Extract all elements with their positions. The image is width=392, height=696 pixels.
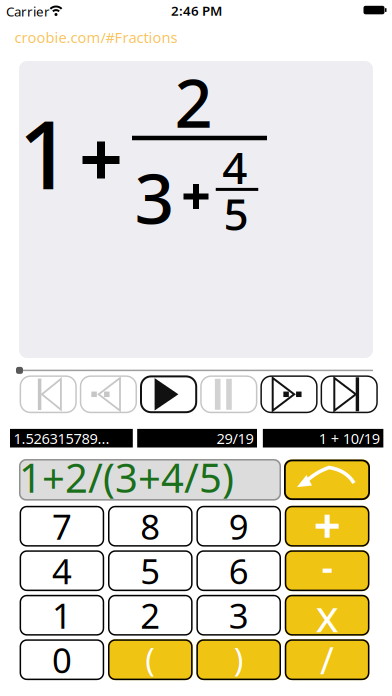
staticText: 2	[140, 592, 160, 638]
staticText: 1	[18, 90, 72, 215]
staticText: 6	[229, 548, 249, 594]
staticText: /	[320, 635, 334, 684]
staticText: 9	[229, 503, 249, 549]
staticText: 4	[52, 548, 72, 594]
button[interactable]: 6	[196, 550, 281, 591]
button[interactable]	[140, 375, 197, 413]
button[interactable]	[285, 506, 369, 547]
button[interactable]	[20, 375, 77, 413]
button[interactable]	[260, 375, 318, 413]
button[interactable]: 7	[20, 506, 104, 547]
staticText: croobie.com/#Fractions	[14, 27, 177, 47]
staticText: 3	[134, 151, 174, 243]
button[interactable]	[16, 367, 23, 374]
staticText: )	[234, 638, 244, 681]
staticText: 1.526315789...	[13, 428, 109, 448]
button[interactable]: 0	[20, 639, 104, 680]
button[interactable]: 8	[108, 506, 193, 547]
button[interactable]	[321, 375, 378, 413]
button[interactable]: x	[285, 595, 369, 636]
staticText: 4	[222, 138, 247, 196]
button[interactable]: croobie.com/#Fractions	[14, 27, 177, 47]
staticText: 5	[140, 548, 160, 594]
staticText: 7	[52, 503, 72, 549]
staticText: 1 + 10/19	[319, 428, 380, 448]
button[interactable]: 2	[108, 595, 193, 636]
button[interactable]: /	[285, 639, 369, 680]
staticText: 2:46 PM	[171, 2, 222, 19]
staticText: 1+2/(3+4/5)	[19, 451, 234, 504]
button[interactable]: 3	[196, 595, 281, 636]
staticText: 3	[229, 592, 249, 638]
staticText: 5	[223, 184, 248, 243]
button[interactable]: )	[196, 639, 281, 680]
staticText: 0	[52, 637, 72, 683]
staticText: Carrier	[6, 2, 50, 20]
button[interactable]: 5	[108, 550, 193, 591]
button[interactable]: 4	[20, 550, 104, 591]
button[interactable]: (	[108, 639, 193, 680]
staticText: 2	[174, 58, 212, 146]
button[interactable]: 1	[20, 595, 104, 636]
button[interactable]	[285, 550, 369, 591]
staticText: 1	[52, 592, 72, 638]
staticText: x	[316, 586, 339, 644]
button[interactable]	[200, 375, 257, 413]
button[interactable]	[80, 375, 137, 413]
staticText: (	[145, 638, 155, 681]
button[interactable]	[284, 460, 370, 500]
button[interactable]: 9	[196, 506, 281, 547]
staticText: 8	[140, 503, 160, 549]
staticText: 29/19	[216, 428, 253, 448]
